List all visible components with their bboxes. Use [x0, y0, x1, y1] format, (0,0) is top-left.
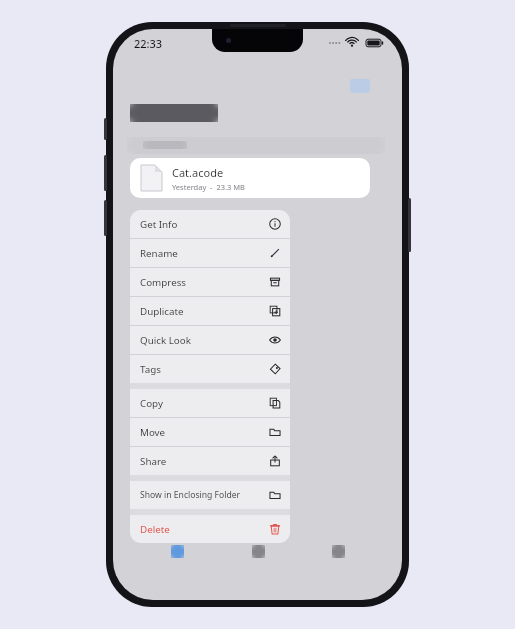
button[interactable]: Get Info	[130, 210, 290, 238]
staticText: Show in Enclosing Folder	[140, 489, 265, 501]
button[interactable]: Tags	[130, 355, 290, 383]
staticText: Tags	[140, 363, 265, 376]
button[interactable]: Tab	[241, 542, 275, 570]
staticText: Quick Look	[140, 334, 265, 347]
staticText: 22:33	[134, 36, 163, 51]
button[interactable]: Move	[130, 418, 290, 446]
staticText: Share	[140, 455, 265, 468]
staticText: Compress	[140, 276, 265, 289]
staticText: Rename	[140, 247, 265, 260]
button[interactable]: Delete	[130, 515, 290, 543]
staticText: Delete	[140, 523, 265, 536]
staticText: Move	[140, 426, 265, 439]
staticText: Copy	[140, 397, 265, 410]
button[interactable]: Show in Enclosing Folder	[130, 481, 290, 509]
button[interactable]: Tab	[160, 542, 194, 570]
staticText: Yesterday - 23.3 MB	[172, 182, 245, 192]
button[interactable]: Share	[130, 447, 290, 475]
staticText: Get Info	[140, 218, 265, 231]
button[interactable]: Cat.acode	[130, 158, 370, 198]
staticText: Duplicate	[140, 305, 265, 318]
button[interactable]: Tab	[321, 542, 355, 570]
button[interactable]: Duplicate	[130, 297, 290, 325]
button[interactable]: Quick Look	[130, 326, 290, 354]
button[interactable]: Copy	[130, 389, 290, 417]
button[interactable]: Compress	[130, 268, 290, 296]
button[interactable]: Rename	[130, 239, 290, 267]
staticText: Cat.acode	[172, 165, 224, 180]
